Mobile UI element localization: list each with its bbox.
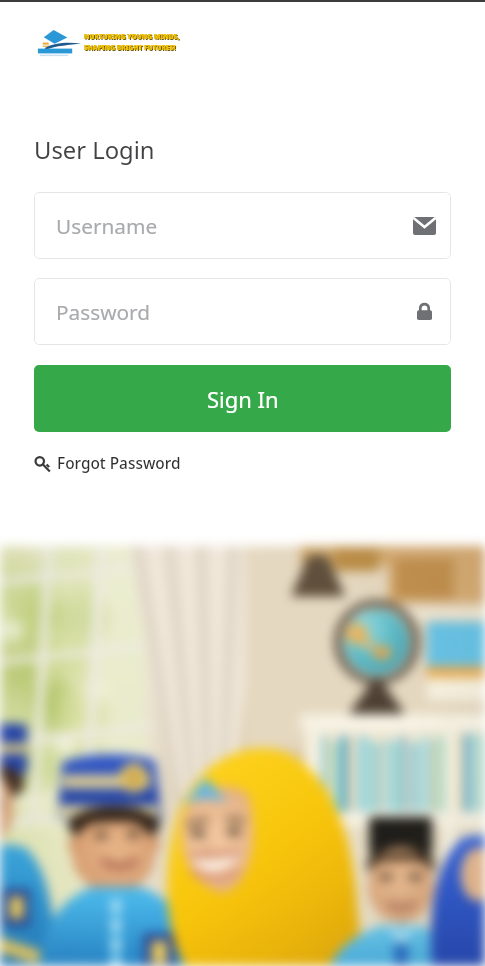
button[interactable]: Password	[34, 278, 451, 345]
button[interactable]: Sign In	[34, 365, 451, 432]
button[interactable]: Forgot password	[31, 450, 184, 477]
staticText: Password	[56, 298, 151, 326]
staticText: Username	[56, 212, 158, 240]
staticText: SHAPING BRIGHT FUTURES!	[84, 43, 176, 52]
other: Forgot password	[34, 455, 52, 473]
staticText: Forgot Password	[57, 453, 181, 474]
button[interactable]: Username	[34, 192, 451, 259]
staticText: User Login	[34, 134, 155, 166]
staticText: NURTURING YOUNG MINDS,	[84, 32, 180, 41]
staticText: NURTURING YOUNG MINDS,	[85, 33, 181, 42]
staticText: SHAPING BRIGHT FUTURES!	[85, 44, 177, 53]
other: Little Caliph - Nurturing young minds, s…	[33, 27, 180, 57]
staticText: NURTURING YOUNG MINDS,	[84, 32, 180, 41]
staticText: SHAPING BRIGHT FUTURES!	[84, 43, 176, 52]
staticText: Sign In	[207, 384, 279, 414]
